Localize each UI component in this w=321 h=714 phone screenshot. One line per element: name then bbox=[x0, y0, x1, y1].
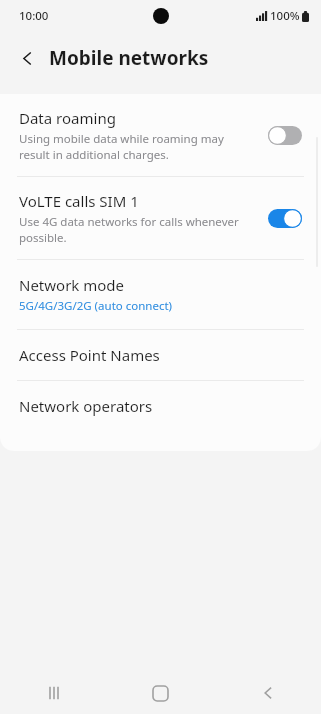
staticText: Using mobile data while roaming may resu… bbox=[19, 131, 224, 162]
button[interactable]: Data roaming bbox=[0, 94, 321, 176]
button[interactable]: Recent apps bbox=[0, 672, 107, 714]
button[interactable]: Access Point Names bbox=[0, 330, 321, 380]
staticText: Access Point Names bbox=[19, 345, 160, 365]
staticText: Network mode bbox=[19, 275, 125, 295]
staticText: Use 4G data networks for calls whenever … bbox=[19, 214, 239, 245]
staticText: 10:00 bbox=[19, 8, 49, 24]
button[interactable]: Off bbox=[265, 122, 305, 148]
button[interactable]: On bbox=[265, 205, 305, 231]
button[interactable]: Back bbox=[214, 672, 321, 714]
button[interactable]: VoLTE calls SIM 1 bbox=[0, 177, 321, 259]
staticText: Network operators bbox=[19, 396, 153, 416]
staticText: VoLTE calls SIM 1 bbox=[19, 191, 139, 211]
button[interactable]: Home bbox=[107, 672, 214, 714]
staticText: Mobile networks bbox=[49, 45, 209, 71]
staticText: Data roaming bbox=[19, 108, 116, 128]
button[interactable]: Network mode bbox=[0, 260, 321, 329]
button[interactable]: Network operators bbox=[0, 381, 321, 431]
staticText: 5G/4G/3G/2G (auto connect) bbox=[19, 298, 173, 314]
button[interactable]: Back bbox=[8, 39, 46, 77]
staticText: 100% bbox=[270, 8, 300, 24]
